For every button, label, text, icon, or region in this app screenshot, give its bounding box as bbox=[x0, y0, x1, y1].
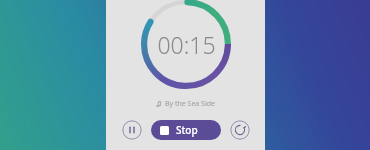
staticText: By the Sea Side bbox=[165, 99, 216, 109]
button[interactable]: By the Sea Side bbox=[151, 98, 220, 110]
button[interactable]: Pause bbox=[122, 120, 142, 140]
staticText: 00:15 bbox=[157, 29, 216, 60]
button[interactable]: Stop bbox=[151, 120, 221, 140]
button[interactable]: Reset bbox=[230, 120, 250, 140]
staticText: Stop bbox=[176, 123, 198, 137]
